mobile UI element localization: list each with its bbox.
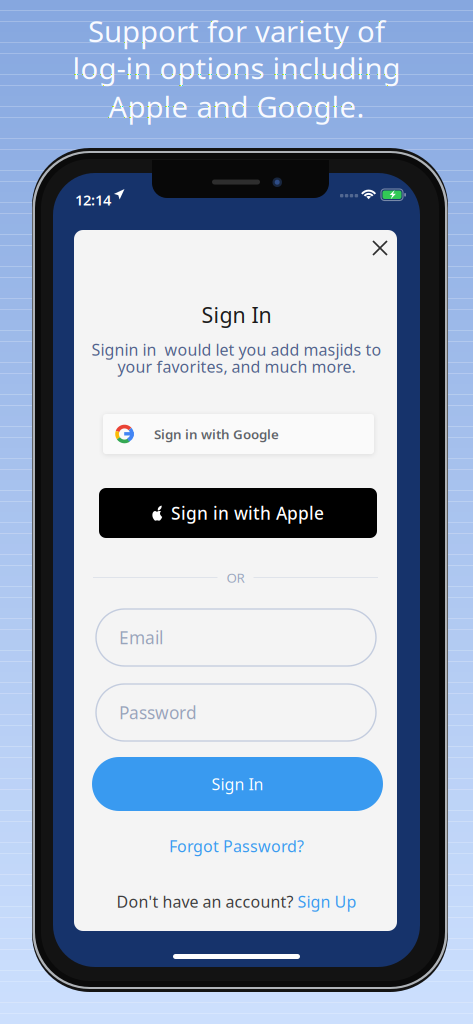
button[interactable]: Sign in with Google [103,414,374,454]
staticText: Email [119,626,163,649]
button[interactable]: Sign in with Apple [99,488,377,538]
staticText: Sign Up [297,891,356,912]
staticText: Signin in would let you add masjids to [91,339,381,360]
button[interactable]: Sign In [92,757,383,811]
button[interactable]: Close [365,233,395,263]
button[interactable]: Email [96,609,376,666]
button[interactable]: Forgot Password? [166,836,306,856]
staticText: Sign in with Google [154,425,279,443]
staticText: your favorites, and much more. [117,356,355,377]
button[interactable]: Password [96,684,376,741]
staticText: Sign In [201,301,271,329]
staticText: 12:14 [75,190,111,209]
staticText: Forgot Password? [169,835,304,857]
staticText: OR [226,569,244,586]
staticText: Apple and Google. [108,87,364,126]
staticText: Don't have an account? [116,891,297,912]
button[interactable]: Sign Up [297,891,356,912]
staticText: Sign In [211,773,263,795]
staticText: log-in options including [72,48,400,87]
staticText: Password [119,701,197,724]
staticText: Support for variety of [88,11,385,50]
staticText: Sign in with Apple [171,501,324,524]
